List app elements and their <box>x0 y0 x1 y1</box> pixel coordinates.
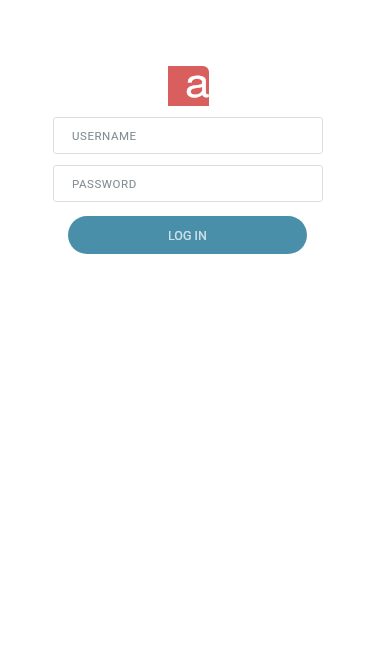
staticText: USERNAME <box>72 129 137 142</box>
button[interactable]: USERNAME <box>53 117 323 154</box>
button[interactable]: PASSWORD <box>53 165 323 202</box>
staticText: LOG IN <box>168 228 207 243</box>
other: App logo <box>168 66 209 106</box>
staticText: PASSWORD <box>72 177 137 190</box>
button[interactable]: LOG IN <box>68 216 307 254</box>
